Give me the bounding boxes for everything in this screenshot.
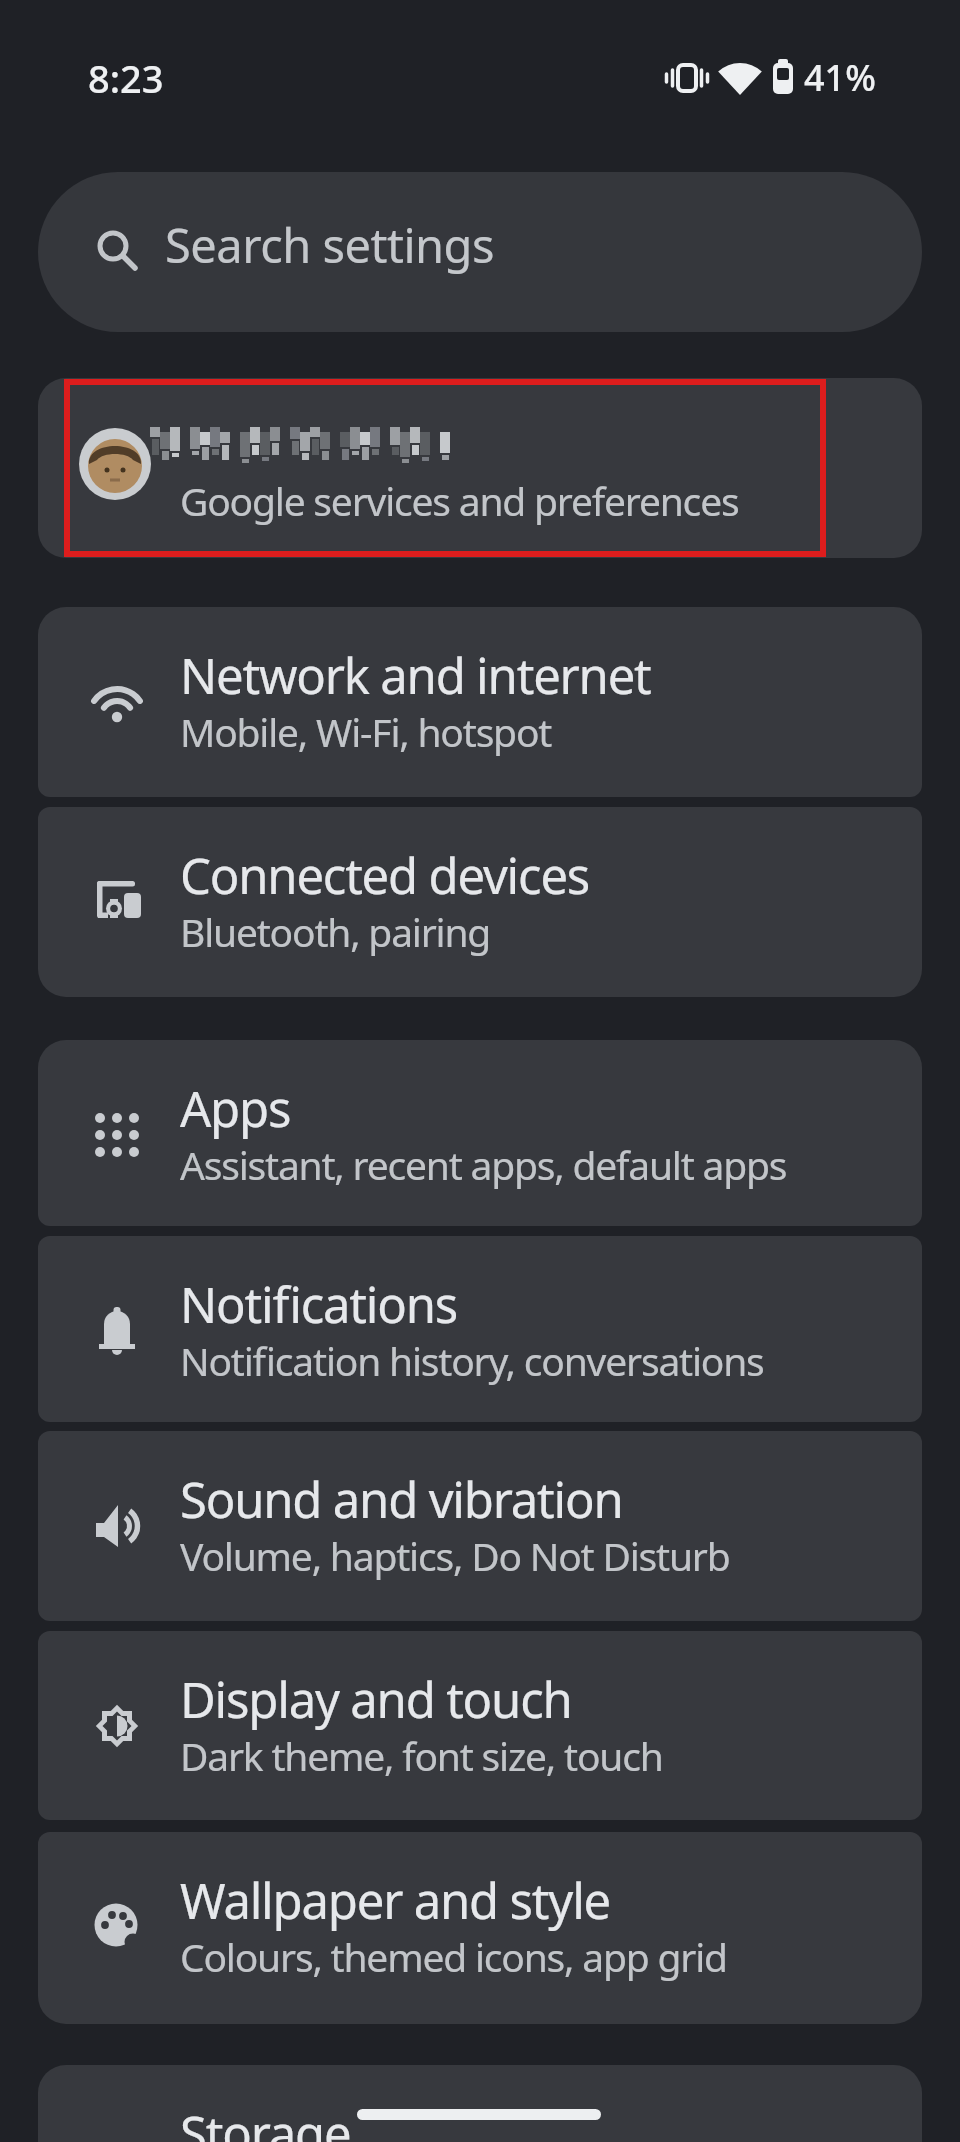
staticText: Wallpaper and style bbox=[180, 1867, 611, 1934]
button[interactable]: Network and internet bbox=[38, 607, 922, 797]
staticText: Sound and vibration bbox=[180, 1466, 623, 1533]
staticText: Notification history, conversations bbox=[180, 1334, 764, 1387]
staticText: Apps bbox=[180, 1075, 291, 1142]
staticText: Colours, themed icons, app grid bbox=[180, 1930, 727, 1983]
staticText: 8:23 bbox=[88, 52, 164, 104]
staticText: Display and touch bbox=[180, 1666, 572, 1733]
button[interactable]: Sound and vibration bbox=[38, 1431, 922, 1621]
staticText: Search settings bbox=[165, 213, 495, 277]
button[interactable]: Search settings bbox=[38, 172, 922, 332]
staticText: Google services and preferences bbox=[180, 474, 739, 527]
button[interactable]: Google services and preferences bbox=[38, 378, 922, 558]
staticText: Assistant, recent apps, default apps bbox=[180, 1138, 787, 1191]
staticText: Bluetooth, pairing bbox=[180, 905, 491, 958]
button[interactable]: Connected devices bbox=[38, 807, 922, 997]
button[interactable]: Wallpaper and style bbox=[38, 1832, 922, 2024]
button[interactable]: Display and touch bbox=[38, 1631, 922, 1820]
button[interactable]: Storage bbox=[38, 2065, 922, 2142]
staticText: Storage bbox=[180, 2100, 351, 2142]
staticText: Dark theme, font size, touch bbox=[180, 1729, 663, 1782]
button[interactable]: Apps bbox=[38, 1040, 922, 1226]
staticText: Mobile, Wi-Fi, hotspot bbox=[180, 705, 552, 758]
staticText: Network and internet bbox=[180, 642, 651, 709]
staticText: Connected devices bbox=[180, 842, 590, 909]
staticText: Volume, haptics, Do Not Disturb bbox=[180, 1529, 730, 1582]
staticText: 41% bbox=[804, 53, 876, 102]
staticText: Notifications bbox=[180, 1271, 458, 1338]
button[interactable]: Notifications bbox=[38, 1236, 922, 1422]
